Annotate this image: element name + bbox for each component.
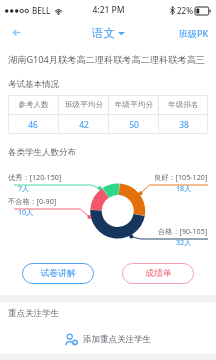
staticText: 42	[79, 119, 89, 131]
staticText: 优秀：[120-150]	[8, 172, 62, 182]
staticText: 22%	[177, 5, 193, 16]
staticText: 班级平均分	[65, 100, 103, 110]
staticText: 年级平均分	[115, 100, 153, 110]
staticText: 合格：[90-105]	[158, 226, 208, 236]
staticText: 38	[179, 119, 189, 131]
button[interactable]: Back	[0, 20, 34, 45]
staticText: 32人	[176, 237, 192, 247]
staticText: 参考人数	[18, 100, 49, 110]
button[interactable]: 班级PK	[172, 23, 216, 43]
button[interactable]: 成绩单	[122, 263, 194, 284]
staticText: 考试基本情况	[8, 79, 59, 90]
staticText: 成绩单	[145, 268, 172, 279]
staticText: BELL	[32, 5, 51, 16]
button[interactable]: 试卷讲解	[22, 263, 94, 284]
staticText: 4:21 PM	[92, 4, 125, 16]
staticText: 年级排名	[168, 100, 199, 110]
staticText: 10人	[18, 207, 34, 217]
staticText: 试卷讲解	[40, 268, 76, 279]
staticText: 不合格：[0-90]	[8, 196, 57, 206]
staticText: 7人	[18, 183, 30, 193]
staticText: 添加重点关注学生	[83, 334, 151, 345]
staticText: 46	[28, 119, 38, 131]
staticText: 各类学生人数分布	[8, 147, 76, 158]
staticText: 重点关注学生	[8, 308, 59, 319]
staticText: 良好：[105-120]	[154, 172, 208, 182]
staticText: 语文	[92, 26, 115, 40]
staticText: 50	[129, 119, 139, 131]
button[interactable]: 语文	[92, 26, 125, 40]
staticText: 班级PK	[179, 27, 209, 39]
staticText: 湖南G104月联考高二理科联考高二理科联考高三	[8, 53, 206, 66]
staticText: 18人	[176, 183, 192, 193]
button[interactable]: 添加重点关注学生	[0, 324, 216, 354]
